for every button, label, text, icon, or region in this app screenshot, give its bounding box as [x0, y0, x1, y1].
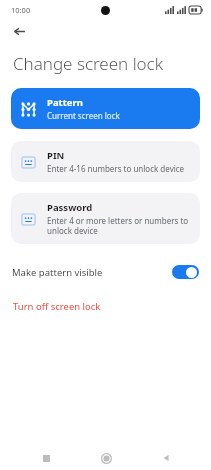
button[interactable]: Home	[95, 447, 117, 469]
button[interactable]: Make pattern visible toggle	[172, 265, 199, 279]
button[interactable]: Make pattern visible	[0, 258, 211, 286]
staticText: Turn off screen lock	[13, 300, 101, 313]
staticText: Pattern	[47, 96, 83, 109]
button[interactable]: Back	[8, 20, 30, 42]
staticText: Enter 4-16 numbers to unlock device	[47, 163, 185, 174]
staticText: Password	[47, 201, 93, 214]
button[interactable]: Back	[155, 447, 177, 469]
staticText: Enter 4 or more letters or numbers to un…	[47, 215, 190, 236]
staticText: Change screen lock	[13, 52, 164, 75]
button[interactable]: PIN	[11, 141, 200, 182]
staticText: 10:00	[11, 5, 31, 15]
button[interactable]: Pattern	[11, 88, 200, 129]
staticText: Make pattern visible	[12, 266, 103, 279]
button[interactable]: Turn off screen lock	[0, 298, 211, 317]
button[interactable]: Password	[11, 193, 200, 244]
staticText: Current screen lock	[47, 110, 120, 121]
button[interactable]: Recents	[35, 447, 57, 469]
staticText: PIN	[47, 149, 65, 162]
